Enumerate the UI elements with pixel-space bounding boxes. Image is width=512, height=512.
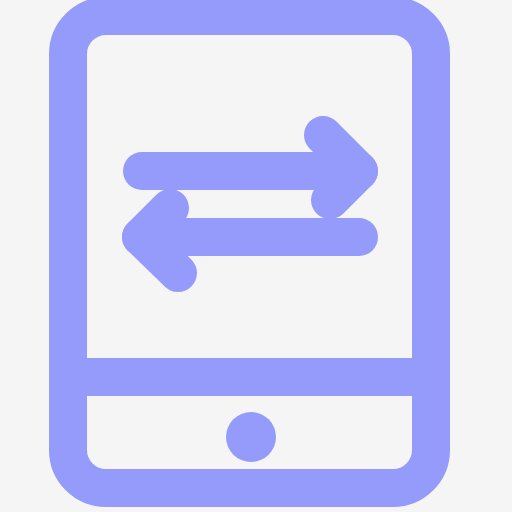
button[interactable]: Tablet data transfer <box>0 0 512 512</box>
